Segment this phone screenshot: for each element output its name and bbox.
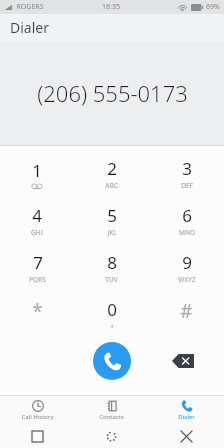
button[interactable]: Call: [93, 342, 131, 380]
staticText: 2: [107, 157, 117, 180]
staticText: 4: [32, 204, 42, 227]
button[interactable]: *: [0, 291, 74, 338]
staticText: 7: [33, 251, 43, 274]
button[interactable]: 0: [74, 291, 149, 338]
button[interactable]: Contacts: [74, 396, 149, 424]
button[interactable]: 6: [149, 197, 224, 244]
button[interactable]: Home: [74, 424, 149, 448]
staticText: 6: [182, 204, 192, 227]
button[interactable]: 2: [74, 150, 149, 197]
button[interactable]: Backspace: [166, 344, 200, 378]
staticText: 3: [182, 157, 192, 180]
staticText: (206) 555-0173: [37, 78, 188, 108]
staticText: 9: [182, 251, 192, 274]
button[interactable]: 3: [149, 150, 224, 197]
staticText: 1: [32, 159, 42, 182]
staticText: 0: [107, 298, 117, 321]
button[interactable]: Recents: [0, 424, 74, 448]
staticText: 5: [107, 204, 117, 227]
button[interactable]: 9: [149, 244, 224, 291]
staticText: ABC: [105, 181, 118, 190]
button[interactable]: 5: [74, 197, 149, 244]
button[interactable]: 8: [74, 244, 149, 291]
staticText: MNO: [179, 228, 195, 237]
button[interactable]: 1: [0, 150, 74, 197]
staticText: *: [32, 298, 43, 324]
staticText: Dialer: [10, 18, 49, 37]
staticText: Call History: [21, 413, 54, 421]
button[interactable]: Dialer: [149, 396, 224, 424]
staticText: GHI: [31, 228, 43, 237]
button[interactable]: Back: [149, 424, 224, 448]
button[interactable]: 7: [0, 244, 74, 291]
staticText: #: [180, 298, 193, 324]
button[interactable]: Call History: [0, 396, 74, 424]
staticText: 69%: [206, 2, 220, 12]
staticText: 18:35: [102, 2, 120, 12]
staticText: JKL: [107, 228, 117, 237]
staticText: ROGERS: [16, 2, 44, 12]
button[interactable]: 4: [0, 197, 74, 244]
staticText: DEF: [181, 181, 193, 190]
staticText: 8: [107, 251, 117, 274]
staticText: Dialer: [178, 413, 195, 421]
staticText: PQRS: [29, 275, 46, 284]
staticText: +: [110, 322, 114, 331]
button[interactable]: #: [149, 291, 224, 338]
staticText: WXYZ: [178, 275, 196, 284]
staticText: Contacts: [99, 413, 124, 421]
staticText: TUV: [105, 275, 118, 284]
